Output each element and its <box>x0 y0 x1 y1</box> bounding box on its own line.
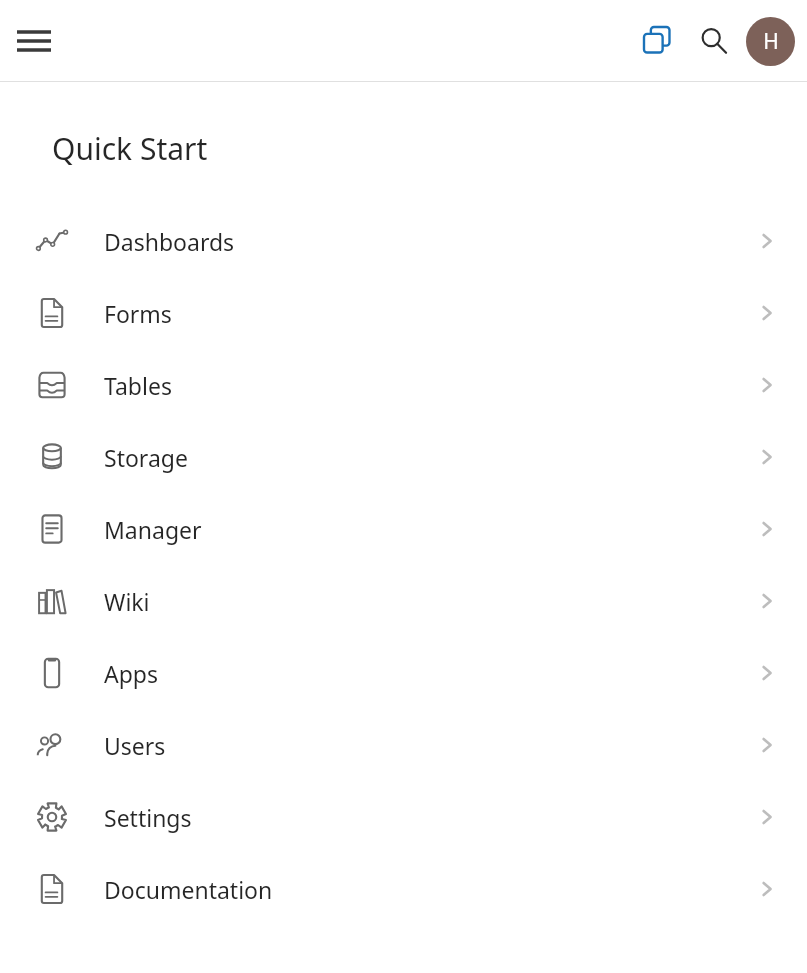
button[interactable]: Duplicate <box>632 15 684 67</box>
staticText: Settings <box>104 802 192 833</box>
button[interactable]: Settings <box>0 781 807 853</box>
button[interactable]: Tables <box>0 349 807 421</box>
staticText: Apps <box>104 658 159 689</box>
staticText: Dashboards <box>104 226 235 257</box>
staticText: Users <box>104 730 166 761</box>
button[interactable]: Wiki <box>0 565 807 637</box>
button[interactable]: Dashboards <box>0 205 807 277</box>
button[interactable]: Apps <box>0 637 807 709</box>
button[interactable]: Manager <box>0 493 807 565</box>
staticText: Quick Start <box>52 128 208 169</box>
staticText: Documentation <box>104 874 273 905</box>
button[interactable]: Documentation <box>0 853 807 925</box>
button[interactable]: Users <box>0 709 807 781</box>
button[interactable]: Search <box>688 15 740 67</box>
button[interactable]: Storage <box>0 421 807 493</box>
staticText: Forms <box>104 298 172 329</box>
staticText: Wiki <box>104 586 150 617</box>
staticText: H <box>763 27 779 56</box>
staticText: Storage <box>104 442 188 473</box>
button[interactable]: Account <box>746 17 795 66</box>
button[interactable]: Menu <box>6 13 62 69</box>
staticText: Tables <box>104 370 172 401</box>
button[interactable]: Forms <box>0 277 807 349</box>
staticText: Manager <box>104 514 202 545</box>
